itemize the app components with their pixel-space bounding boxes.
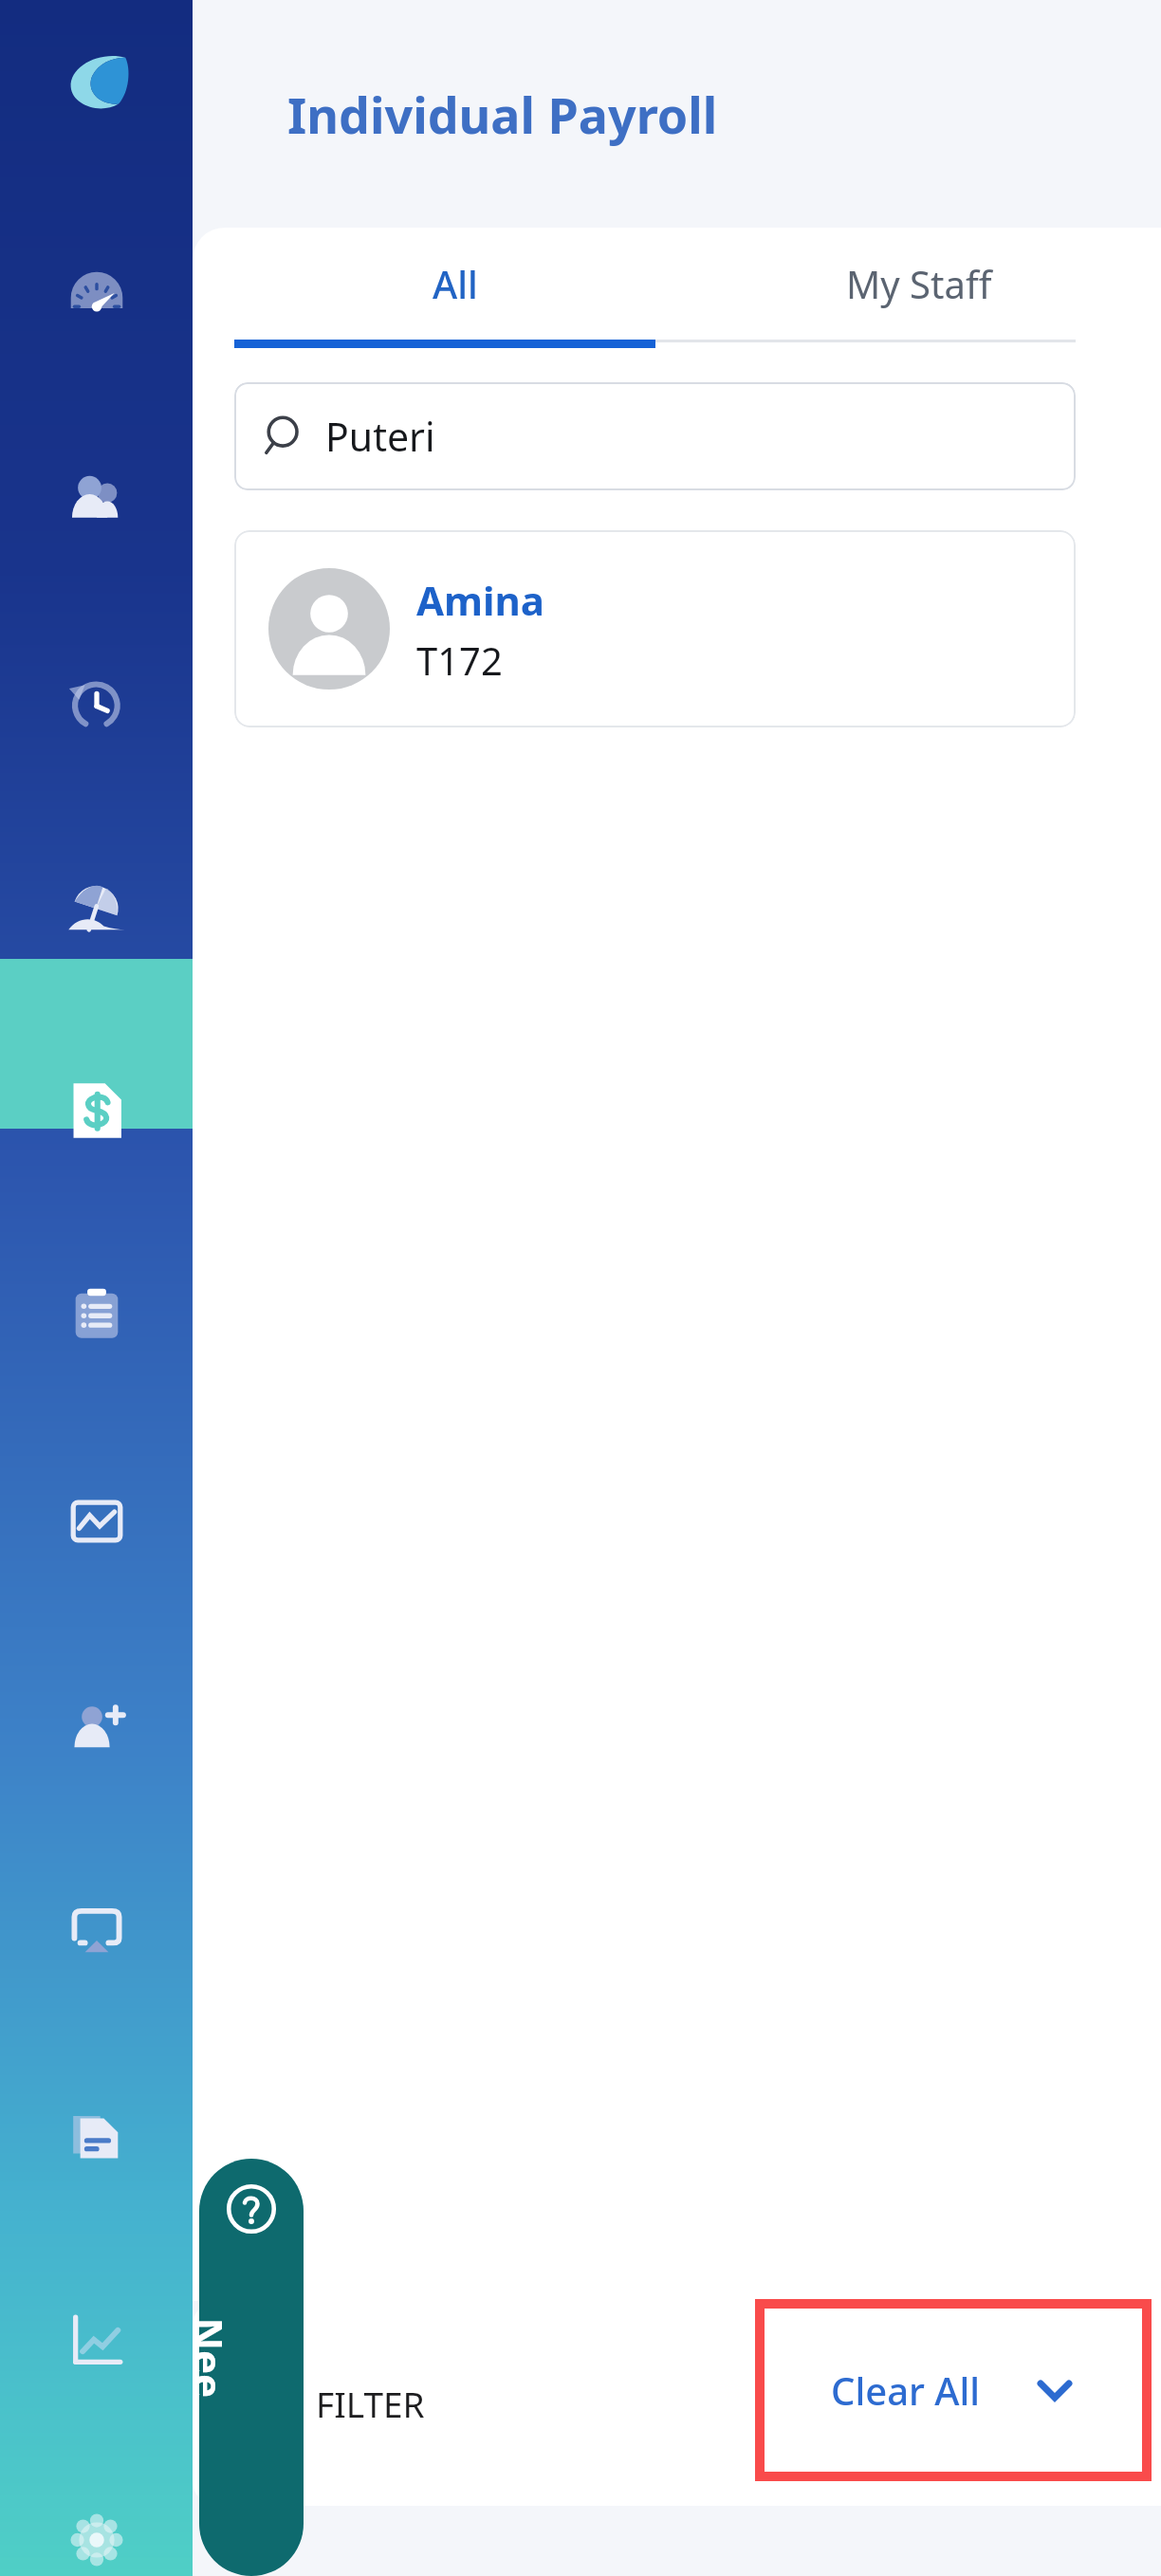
button[interactable]: Need Help? [199, 2159, 304, 2576]
button[interactable]: Dashboard [56, 252, 138, 334]
staticText: Amina [416, 573, 545, 627]
button[interactable]: Leave [56, 868, 138, 949]
staticText: All [433, 258, 478, 309]
button[interactable]: Settings [56, 2503, 138, 2576]
staticText: Clear All [831, 2364, 981, 2416]
button[interactable]: Analytics [56, 2300, 138, 2382]
button[interactable]: All [234, 228, 676, 340]
button[interactable]: Documents [56, 2095, 138, 2177]
button[interactable]: FILTER [316, 2380, 425, 2427]
button[interactable]: Recruitment [56, 1685, 138, 1767]
button[interactable]: Clear All [765, 2309, 1142, 2472]
button[interactable]: Reports [56, 1481, 138, 1562]
button[interactable]: Amina [234, 530, 1076, 727]
button[interactable]: Payroll [51, 1065, 142, 1156]
button[interactable]: Attendance [56, 663, 138, 745]
button[interactable]: My Staff [676, 228, 1161, 340]
staticText: T172 [416, 635, 503, 686]
button[interactable]: Puteri [234, 382, 1076, 490]
staticText: Need Help? [199, 2306, 236, 2410]
button[interactable]: Announcements [56, 1890, 138, 1972]
staticText: Individual Payroll [287, 81, 718, 148]
button[interactable]: Employees [56, 458, 138, 540]
button[interactable]: Claims [56, 1274, 138, 1355]
staticText: Puteri [325, 410, 435, 463]
button[interactable]: Home [51, 38, 142, 129]
staticText: My Staff [846, 258, 992, 309]
